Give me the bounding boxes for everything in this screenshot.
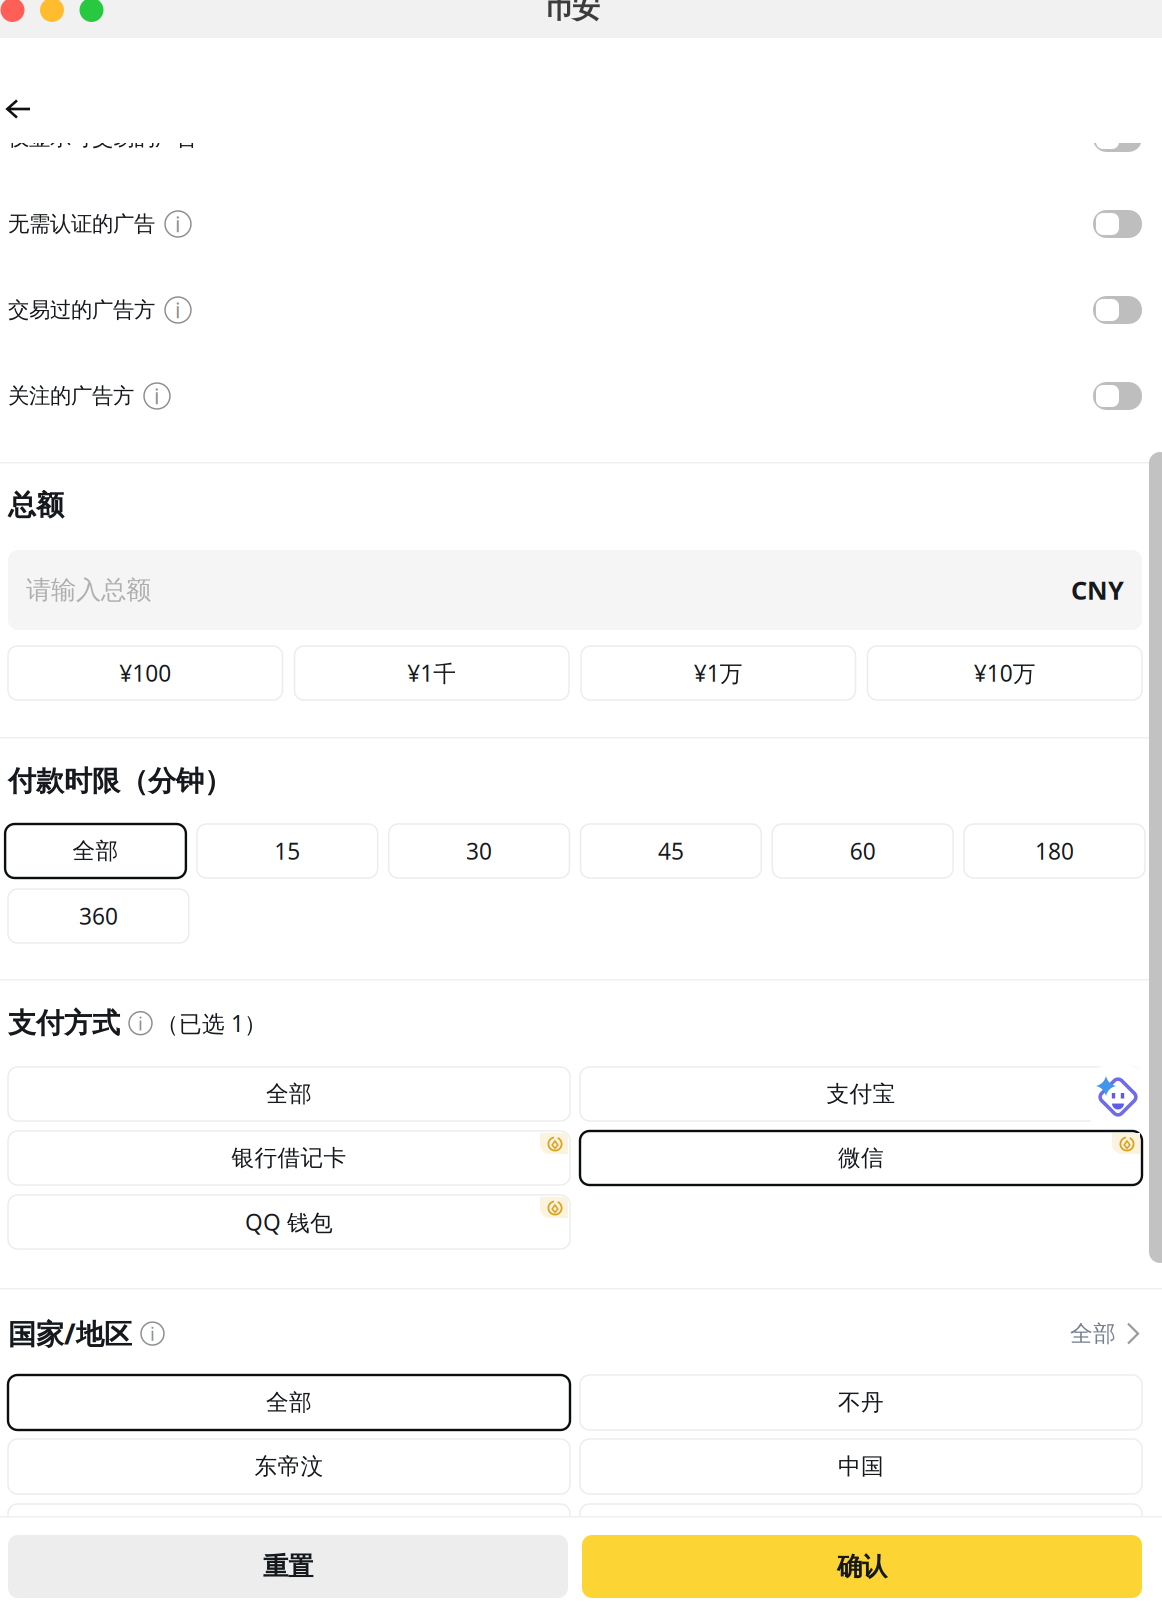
staticText: 文莱 [266,1518,312,1545]
staticText: i [175,296,181,324]
button[interactable]: 确认 [582,1535,1142,1598]
staticText: 不丹 [838,1389,884,1416]
staticText: 支付方式 [8,1006,120,1040]
staticText: 交易过的广告方 [8,297,155,323]
button[interactable]: 银行借记卡 [8,1131,570,1185]
button[interactable]: 关注的广告方 [8,353,1142,439]
staticText: i [175,210,181,238]
staticText: 全部 [1070,1320,1116,1347]
staticText: 柬埔寨 [826,1518,895,1545]
staticText: 45 [658,836,684,866]
button[interactable]: ¥1万 [581,646,855,700]
button[interactable]: 微信 [580,1131,1142,1185]
button[interactable]: 15 [197,824,378,878]
staticText: ¥100 [119,658,171,688]
staticText: 全部 [72,837,118,865]
staticText: 无需认证的广告 [8,211,155,237]
staticText: （已选 1） [156,1008,267,1038]
button[interactable]: ¥1千 [294,646,569,700]
button[interactable]: 文莱 [8,1504,570,1559]
staticText: 币安 [544,0,600,25]
staticText: ¥1万 [694,658,743,688]
staticText: 银行借记卡 [231,1144,346,1172]
button[interactable]: 30 [389,824,569,878]
button[interactable]: ¥100 [8,646,282,700]
staticText: 支付宝 [826,1080,895,1108]
button[interactable]: QQ 钱包 [8,1195,570,1249]
staticText: 180 [1035,836,1074,866]
button[interactable]: 重置 [8,1535,568,1598]
staticText: CNY [1071,573,1124,607]
staticText: ¥1千 [407,658,456,688]
staticText: 中国 [838,1453,884,1480]
button[interactable]: 45 [580,824,761,878]
button[interactable]: 仅显示可交易的广告 [8,95,1142,181]
staticText: 微信 [838,1144,884,1172]
staticText: 关注的广告方 [8,383,134,409]
button[interactable]: ¥10万 [867,646,1142,700]
staticText: 确认 [837,1551,887,1582]
button[interactable]: 东帝汶 [8,1439,570,1494]
staticText: 60 [850,836,876,866]
staticText: 重置 [263,1551,313,1582]
staticText: 30 [466,836,492,866]
staticText: 全部 [266,1080,312,1108]
button[interactable]: AI assistant [1087,1066,1147,1128]
staticText: QQ 钱包 [245,1207,333,1237]
button[interactable]: 中国 [580,1439,1142,1494]
staticText: 15 [274,836,300,866]
button[interactable]: 交易过的广告方 [8,267,1142,353]
staticText: 东帝汶 [254,1453,323,1480]
staticText: ¥10万 [974,658,1036,688]
button[interactable]: 无需认证的广告 [8,181,1142,267]
button[interactable]: 支付宝 [580,1067,1142,1121]
button[interactable]: 全部 [5,824,186,878]
button[interactable]: 不丹 [580,1375,1142,1430]
staticText: i [150,1321,155,1346]
staticText: 仅显示可交易的广告 [8,125,197,151]
staticText: 全部 [266,1389,312,1416]
button[interactable]: 180 [964,824,1145,878]
staticText: i [138,1011,143,1036]
button[interactable]: 60 [772,824,953,878]
button[interactable]: 全部 [1070,1319,1142,1349]
staticText: i [154,382,160,410]
button[interactable]: 柬埔寨 [580,1504,1142,1559]
staticText: 国家/地区 [8,1315,132,1352]
button[interactable]: 全部 [8,1375,570,1430]
staticText: 360 [79,901,118,931]
button[interactable]: Back [0,81,51,137]
staticText: 总额 [8,488,64,522]
button[interactable]: 全部 [8,1067,570,1121]
button[interactable]: 360 [8,889,189,943]
staticText: 付款时限（分钟） [8,764,232,798]
staticText: 请输入总额 [26,574,151,605]
